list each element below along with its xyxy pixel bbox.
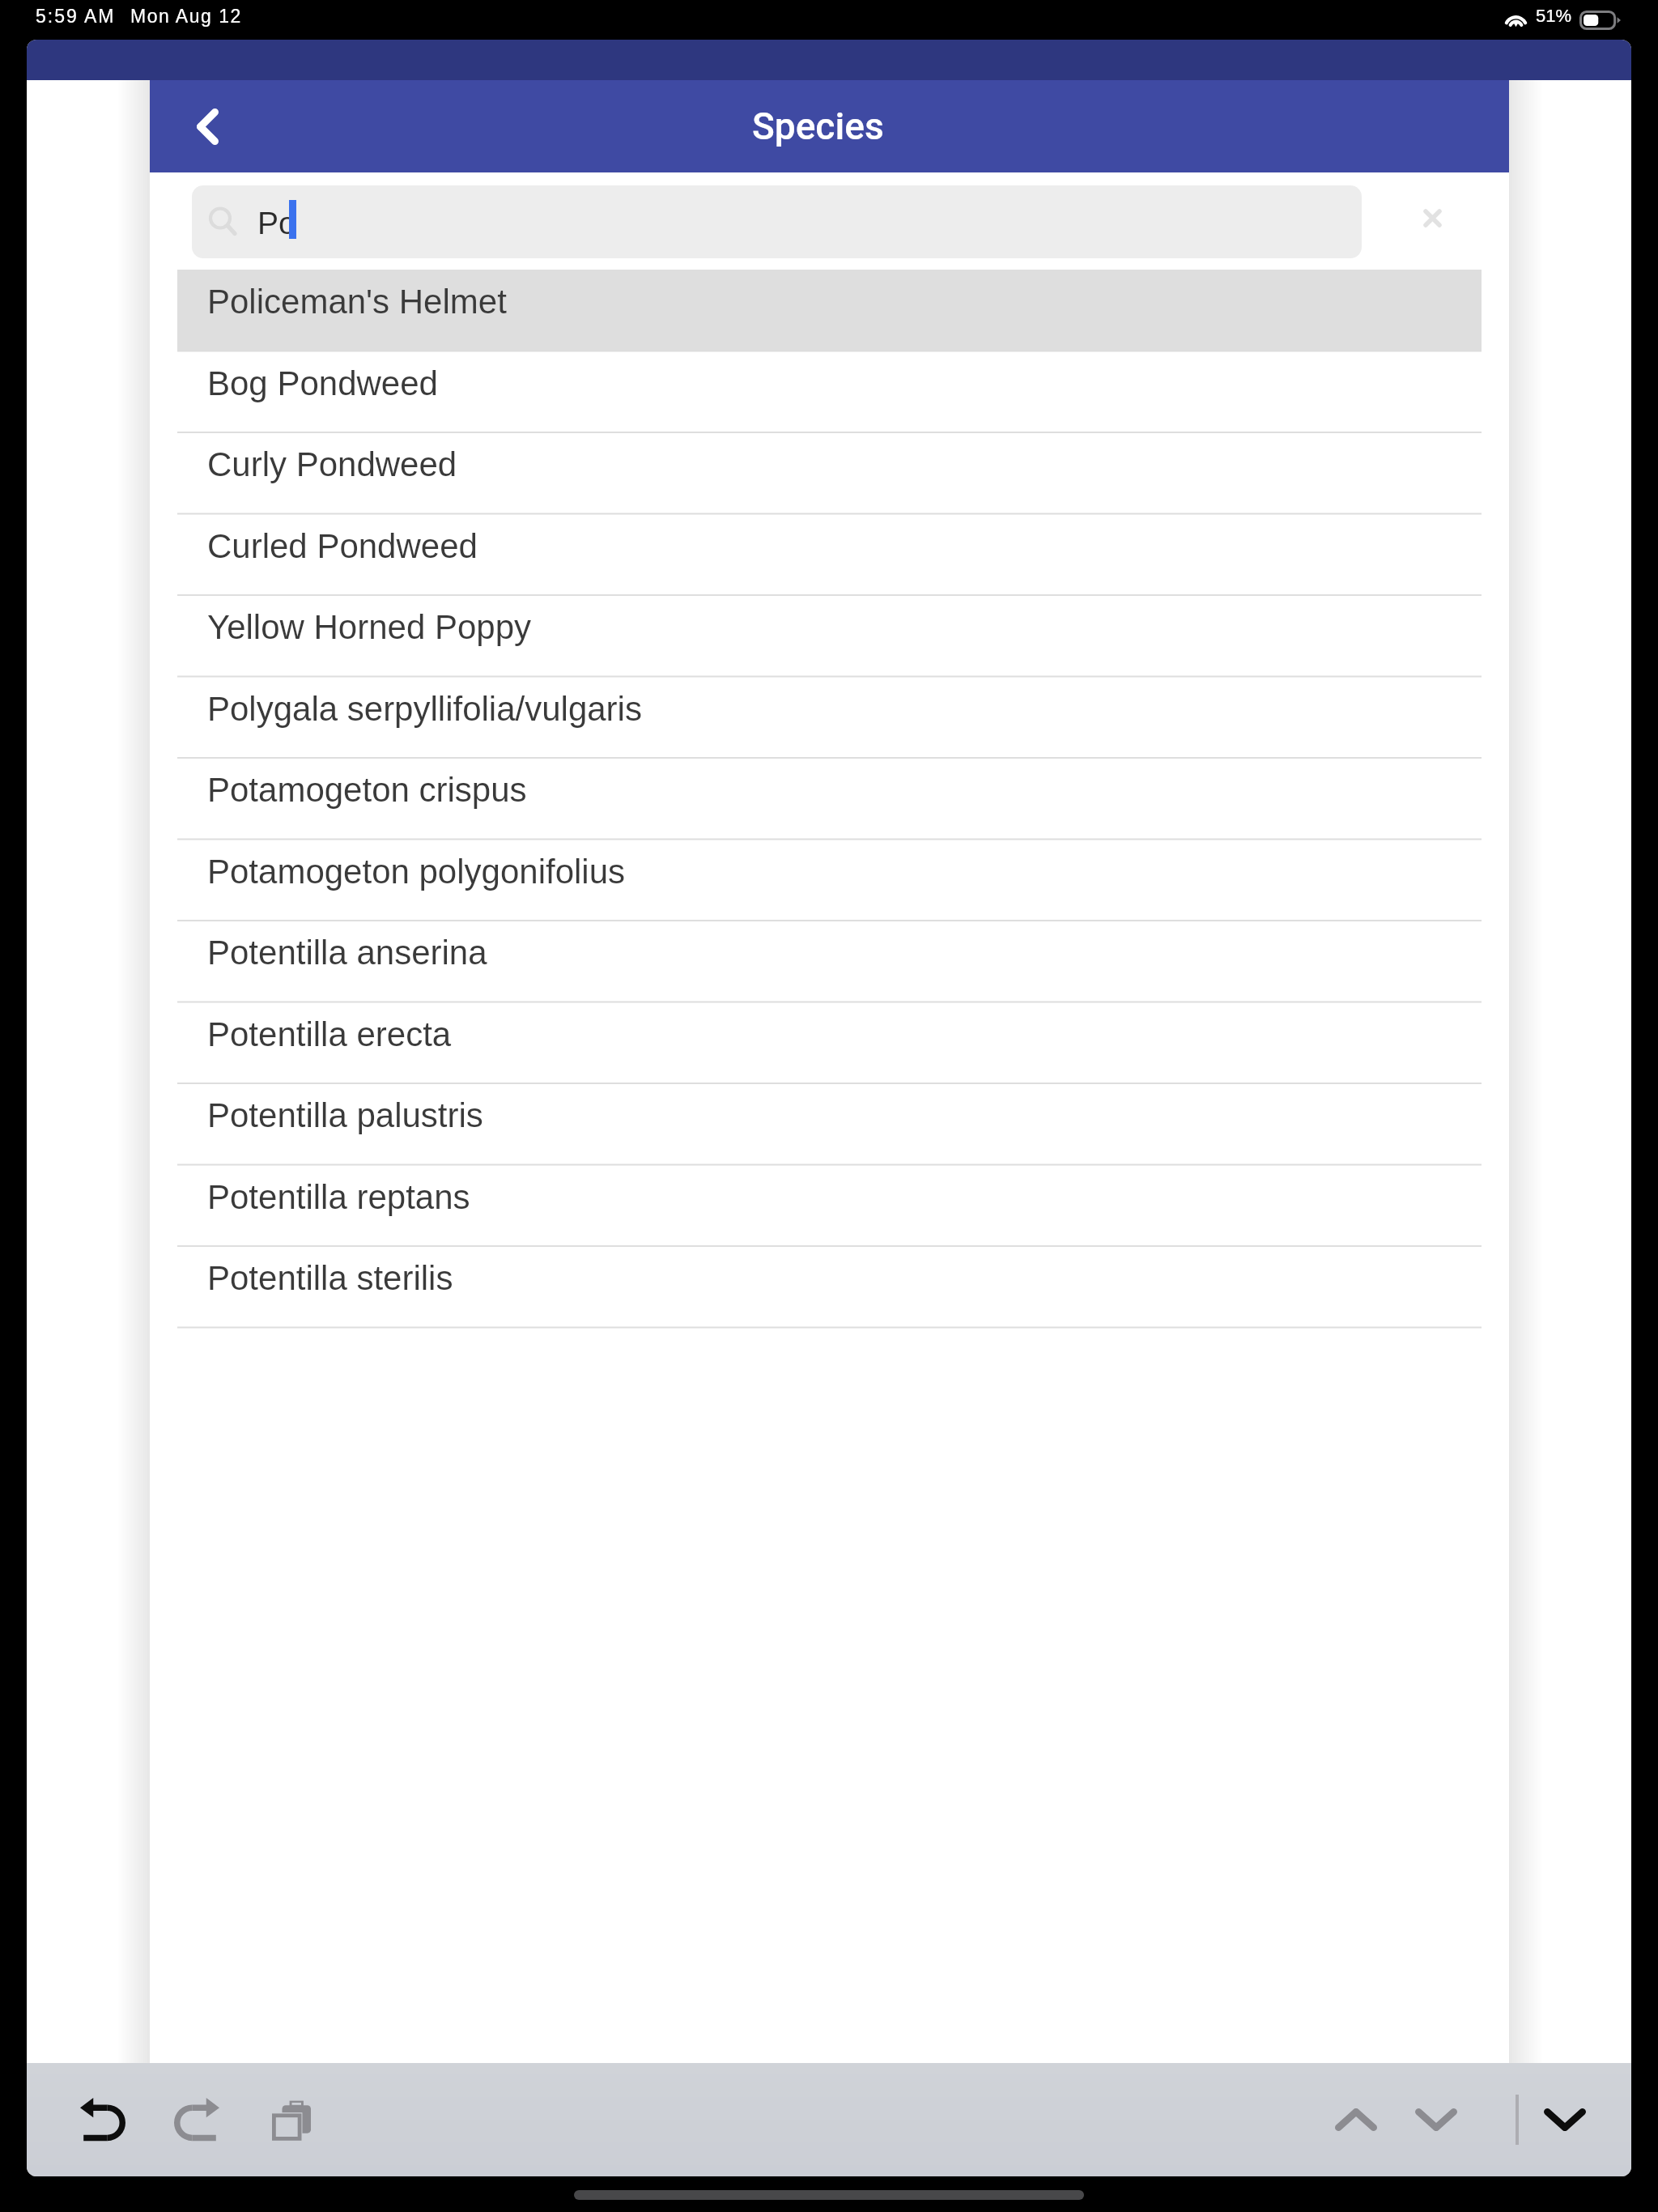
staticText: 51% <box>1536 6 1572 26</box>
button[interactable]: Undo <box>58 2075 147 2164</box>
button[interactable]: Curly Pondweed <box>177 432 1482 514</box>
staticText: Potentilla anserina <box>207 934 487 972</box>
staticText: Yellow Horned Poppy <box>207 608 532 646</box>
button[interactable]: Clear search <box>1392 177 1473 258</box>
button[interactable]: Hide keyboard <box>1520 2075 1609 2164</box>
button[interactable]: Policeman's Helmet <box>177 270 1482 351</box>
button[interactable]: Next field <box>1392 2075 1481 2164</box>
button[interactable]: Polygala serpyllifolia/vulgaris <box>177 677 1482 759</box>
staticText: Polygala serpyllifolia/vulgaris <box>207 690 642 728</box>
button[interactable]: Potentilla palustris <box>177 1083 1482 1165</box>
staticText: Po <box>257 206 296 241</box>
button[interactable]: Potamogeton crispus <box>177 758 1482 840</box>
staticText: Potentilla reptans <box>207 1178 470 1216</box>
button[interactable]: Bog Pondweed <box>177 351 1482 433</box>
staticText: Potentilla erecta <box>207 1015 452 1053</box>
staticText: Bog Pondweed <box>207 364 438 402</box>
button[interactable]: Potamogeton polygonifolius <box>177 840 1482 921</box>
button[interactable]: Po <box>192 185 1362 258</box>
button[interactable]: Potentilla anserina <box>177 921 1482 1002</box>
staticText: Potentilla sterilis <box>207 1259 453 1297</box>
staticText: Curled Pondweed <box>207 527 478 565</box>
staticText: Species <box>752 104 884 148</box>
button[interactable]: Paste <box>247 2075 336 2164</box>
staticText: Mon Aug 12 <box>130 6 242 27</box>
staticText: Potentilla palustris <box>207 1096 483 1134</box>
button[interactable]: Potentilla reptans <box>177 1165 1482 1247</box>
staticText: Potamogeton polygonifolius <box>207 853 626 891</box>
staticText: Policeman's Helmet <box>207 283 507 321</box>
button[interactable]: Potentilla erecta <box>177 1002 1482 1084</box>
staticText: Potamogeton crispus <box>207 771 527 809</box>
button[interactable]: Back <box>172 91 242 161</box>
staticText: 5:59 AM <box>36 6 116 27</box>
button[interactable]: Previous field <box>1312 2075 1401 2164</box>
button[interactable]: Curled Pondweed <box>177 514 1482 596</box>
button[interactable]: Yellow Horned Poppy <box>177 595 1482 677</box>
button[interactable]: Redo <box>152 2075 241 2164</box>
staticText: Curly Pondweed <box>207 445 457 483</box>
button[interactable]: Potentilla sterilis <box>177 1246 1482 1328</box>
